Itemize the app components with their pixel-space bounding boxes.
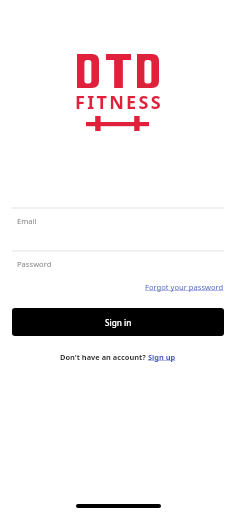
- staticText: Don't have an account?: [60, 352, 148, 362]
- staticText: Password: [17, 259, 52, 269]
- staticText: FITNESS: [75, 90, 163, 115]
- button[interactable]: Sign in: [12, 308, 224, 336]
- button[interactable]: Forgot your password: [145, 282, 224, 292]
- staticText: Email: [17, 216, 37, 226]
- button[interactable]: Password: [17, 251, 236, 277]
- staticText: Sign in: [105, 317, 132, 328]
- button[interactable]: Email: [17, 208, 236, 234]
- button[interactable]: Sign up: [148, 352, 176, 362]
